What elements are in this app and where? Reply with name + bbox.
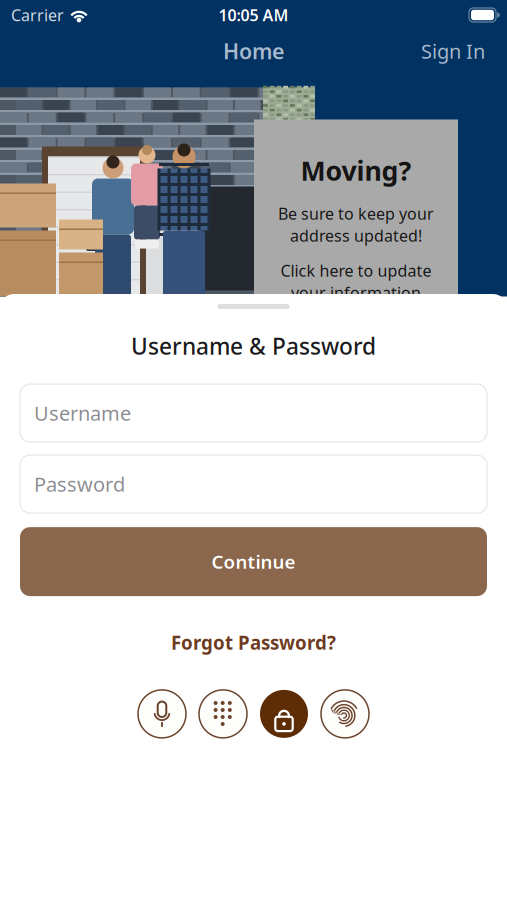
button[interactable]: Username bbox=[20, 384, 487, 442]
staticText: Carrier bbox=[11, 4, 64, 26]
button[interactable]: Continue bbox=[20, 527, 487, 596]
button[interactable]: Password login bbox=[253, 685, 314, 743]
button[interactable]: Forgot Password? bbox=[155, 623, 352, 662]
button[interactable]: Keypad login bbox=[192, 685, 253, 743]
button[interactable]: Fingerprint login bbox=[314, 685, 375, 743]
button[interactable]: Moving? bbox=[254, 119, 458, 297]
staticText: your information bbox=[291, 282, 421, 303]
staticText: Forgot Password? bbox=[171, 630, 336, 655]
staticText: Continue bbox=[211, 549, 295, 574]
staticText: Username bbox=[34, 400, 131, 426]
staticText: 10:05 AM bbox=[218, 4, 288, 26]
staticText: Moving? bbox=[300, 153, 411, 188]
staticText: address updated! bbox=[290, 225, 422, 246]
staticText: Be sure to keep your bbox=[278, 203, 434, 224]
button[interactable]: Home bbox=[211, 31, 296, 71]
staticText: Click here to update bbox=[280, 260, 431, 281]
staticText: Sign In bbox=[421, 38, 485, 64]
button[interactable]: Password bbox=[20, 455, 487, 513]
button[interactable]: Voice login bbox=[131, 685, 192, 743]
staticText: Password bbox=[34, 471, 125, 497]
staticText: Username & Password bbox=[131, 331, 376, 361]
button[interactable]: Sign In bbox=[409, 32, 497, 70]
staticText: Home bbox=[223, 37, 284, 65]
